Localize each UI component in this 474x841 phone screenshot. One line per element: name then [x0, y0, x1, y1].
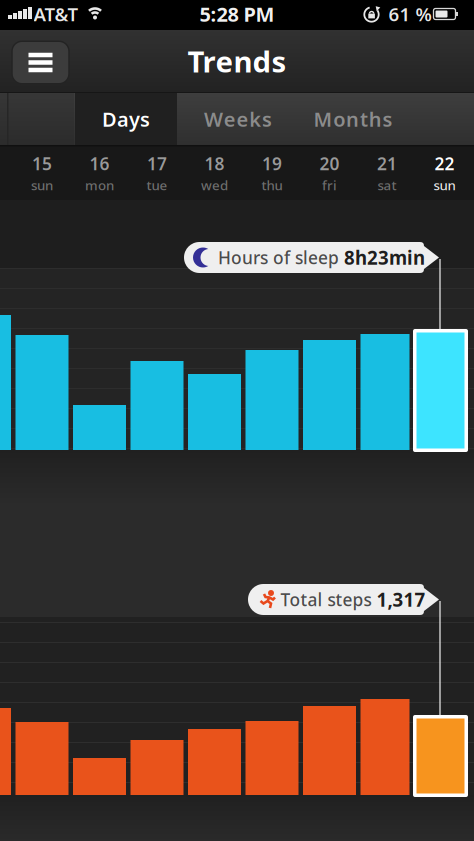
staticText: 1,317	[376, 587, 425, 612]
button[interactable]: 17	[130, 148, 184, 198]
staticText: thu	[261, 176, 282, 194]
button[interactable]: Menu	[12, 41, 69, 84]
staticText: 19	[262, 152, 282, 175]
button[interactable]: 16	[72, 148, 126, 198]
staticText: AT&T	[33, 2, 78, 26]
staticText: 21	[377, 152, 397, 175]
button[interactable]: 15	[15, 148, 69, 198]
staticText: 15	[32, 152, 52, 175]
button[interactable]: Days	[75, 92, 177, 146]
staticText: Weeks	[204, 106, 272, 132]
button[interactable]: Months	[298, 92, 408, 146]
staticText: 22	[434, 152, 454, 175]
staticText: Hours of sleep	[218, 246, 339, 269]
staticText: 20	[319, 152, 339, 175]
staticText: Trends	[187, 41, 286, 80]
button[interactable]: 18	[187, 148, 241, 198]
staticText: Days	[102, 106, 150, 132]
staticText: 18	[204, 152, 224, 175]
button[interactable]: 22	[417, 148, 471, 198]
button[interactable]: 19	[245, 148, 299, 198]
staticText: sun	[433, 176, 455, 194]
staticText: sun	[31, 176, 53, 194]
staticText: 5:28 PM	[199, 1, 274, 27]
staticText: wed	[201, 176, 228, 194]
staticText: Total steps	[280, 588, 371, 611]
staticText: 8h23min	[344, 245, 425, 270]
staticText: sat	[377, 176, 396, 194]
staticText: 61 %	[388, 2, 431, 26]
staticText: Months	[313, 106, 392, 132]
button[interactable]: Weeks	[183, 92, 293, 146]
staticText: tue	[146, 176, 167, 194]
staticText: 16	[89, 152, 109, 175]
button[interactable]: 20	[302, 148, 356, 198]
staticText: fri	[322, 176, 337, 194]
button[interactable]: 21	[360, 148, 414, 198]
staticText: 17	[147, 152, 167, 175]
staticText: mon	[85, 176, 114, 194]
